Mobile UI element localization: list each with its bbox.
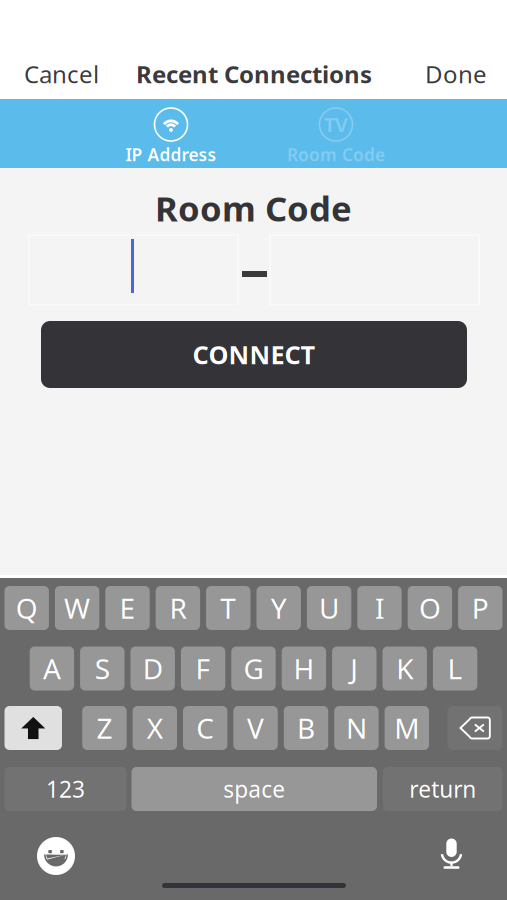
button[interactable]: S: [80, 646, 124, 690]
button[interactable]: K: [382, 646, 427, 690]
button[interactable]: space: [131, 767, 377, 811]
button[interactable]: I: [357, 586, 402, 630]
staticText: O: [419, 589, 441, 627]
button[interactable]: D: [130, 646, 175, 690]
button[interactable]: Emoji: [37, 837, 75, 875]
staticText: M: [394, 709, 419, 747]
button[interactable]: Q: [4, 586, 49, 630]
staticText: TV: [324, 111, 348, 138]
button[interactable]: C: [183, 706, 227, 750]
button[interactable]: A: [30, 646, 74, 690]
button[interactable]: O: [408, 586, 452, 630]
staticText: Z: [96, 709, 112, 747]
staticText: D: [143, 650, 163, 687]
staticText: G: [243, 650, 263, 687]
staticText: E: [119, 589, 135, 627]
staticText: N: [346, 709, 367, 747]
button[interactable]: Y: [256, 586, 301, 630]
staticText: J: [350, 650, 358, 687]
staticText: X: [147, 709, 163, 747]
button[interactable]: return: [383, 767, 502, 811]
staticText: K: [396, 650, 413, 687]
button[interactable]: TV: [246, 108, 426, 166]
staticText: space: [223, 774, 285, 804]
button[interactable]: W: [55, 586, 99, 630]
button[interactable]: R: [156, 586, 200, 630]
staticText: W: [64, 589, 90, 627]
button[interactable]: M: [385, 706, 429, 750]
staticText: A: [43, 650, 61, 687]
staticText: P: [472, 589, 489, 627]
staticText: S: [95, 650, 110, 687]
staticText: Room Code: [155, 185, 352, 231]
staticText: return: [409, 774, 476, 804]
staticText: R: [169, 589, 186, 627]
button[interactable]: X: [133, 706, 177, 750]
staticText: U: [319, 589, 339, 627]
staticText: Done: [425, 58, 487, 90]
button[interactable]: U: [307, 586, 351, 630]
button[interactable]: Done: [411, 52, 487, 96]
button[interactable]: G: [231, 646, 276, 690]
button[interactable]: L: [433, 646, 477, 690]
staticText: H: [293, 650, 314, 687]
staticText: Cancel: [24, 58, 99, 90]
staticText: B: [297, 709, 315, 747]
staticText: Y: [271, 589, 287, 627]
button[interactable]: 123: [4, 767, 126, 811]
button[interactable]: H: [282, 646, 326, 690]
staticText: L: [448, 650, 463, 687]
button[interactable]: F: [181, 646, 225, 690]
button[interactable]: V: [233, 706, 278, 750]
button[interactable]: IP Address: [81, 108, 261, 166]
staticText: IP Address: [125, 143, 216, 166]
button[interactable]: CONNECT: [41, 321, 467, 388]
button[interactable]: N: [334, 706, 379, 750]
button[interactable]: P: [458, 586, 502, 630]
staticText: CONNECT: [192, 338, 315, 371]
button[interactable]: Cancel: [24, 52, 120, 96]
button[interactable]: Delete: [447, 706, 502, 750]
button[interactable]: Dictation: [438, 838, 464, 871]
button[interactable]: B: [284, 706, 328, 750]
staticText: 123: [46, 774, 85, 804]
staticText: Q: [16, 589, 38, 627]
button[interactable]: Z: [82, 706, 127, 750]
button[interactable]: T: [206, 586, 250, 630]
staticText: I: [375, 589, 384, 627]
staticText: Recent Connections: [136, 58, 372, 90]
button[interactable]: Shift: [4, 706, 62, 750]
staticText: T: [220, 589, 236, 627]
button[interactable]: J: [332, 646, 376, 690]
button[interactable]: E: [105, 586, 150, 630]
staticText: C: [196, 709, 214, 747]
staticText: V: [247, 709, 264, 747]
staticText: F: [196, 650, 211, 687]
staticText: Room Code: [287, 143, 385, 166]
